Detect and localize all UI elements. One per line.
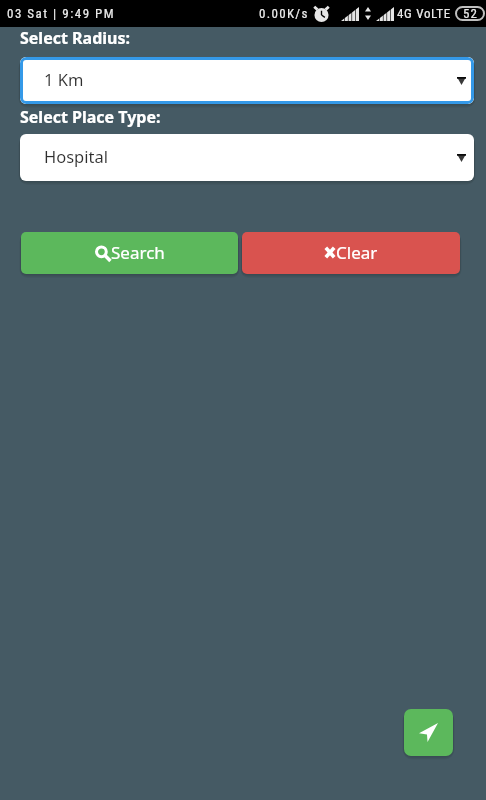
staticText: Select Place Type: (20, 106, 161, 128)
staticText: 1 Km (44, 68, 84, 90)
button[interactable]: Search (21, 232, 238, 274)
staticText: 0.00K/s (259, 6, 309, 21)
button[interactable]: 1 Km (20, 57, 474, 104)
button[interactable]: Hospital (20, 134, 474, 181)
button[interactable]: Clear (242, 232, 460, 274)
staticText: 52 (463, 6, 478, 21)
staticText: Select Radius: (20, 27, 130, 49)
staticText: Hospital (44, 145, 108, 167)
staticText: 4G VoLTE (397, 6, 451, 21)
staticText: Clear (336, 241, 378, 264)
button[interactable]: My location (404, 709, 453, 756)
staticText: 03 Sat | 9:49 PM (7, 6, 116, 21)
staticText: Search (111, 241, 165, 264)
